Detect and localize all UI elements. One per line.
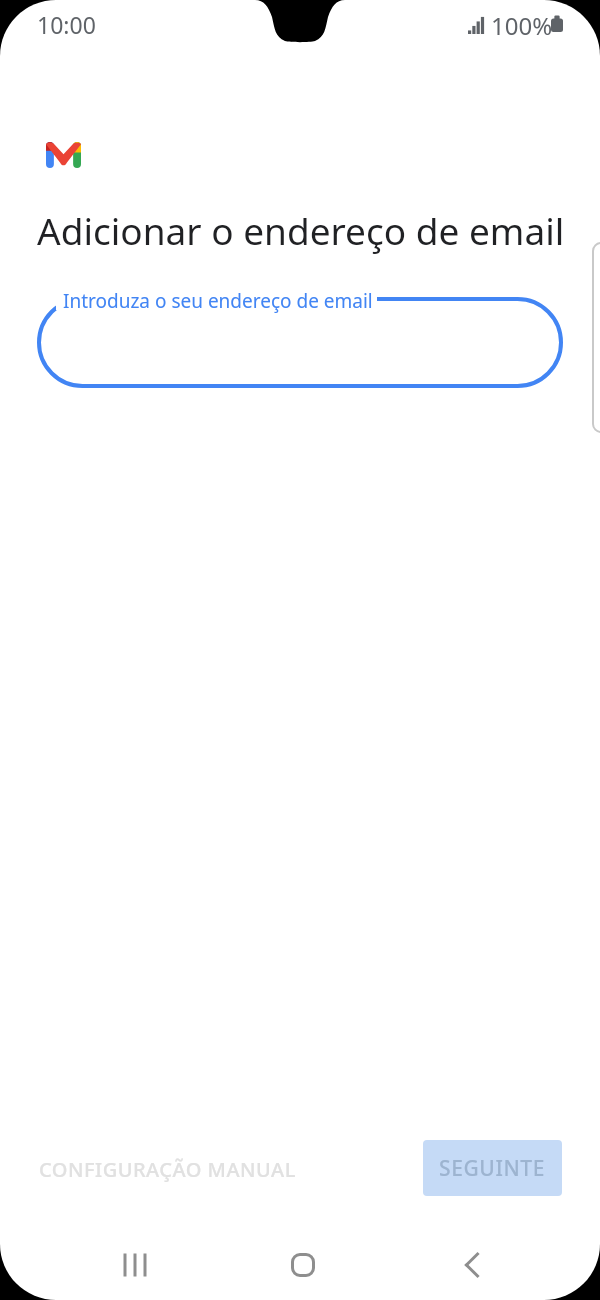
button[interactable]: Home: [268, 1230, 338, 1300]
button[interactable]: Back: [436, 1230, 506, 1300]
staticText: Adicionar o endereço de email: [37, 205, 565, 255]
staticText: 10:00: [37, 9, 96, 40]
staticText: CONFIGURAÇÃO MANUAL: [39, 1156, 296, 1183]
staticText: Introduza o seu endereço de email: [63, 288, 373, 314]
staticText: 100%: [491, 9, 553, 42]
staticText: SEGUINTE: [439, 1154, 546, 1183]
button[interactable]: CONFIGURAÇÃO MANUAL: [29, 1148, 306, 1191]
button[interactable]: Recents: [100, 1230, 170, 1300]
button[interactable]: SEGUINTE: [423, 1140, 562, 1196]
